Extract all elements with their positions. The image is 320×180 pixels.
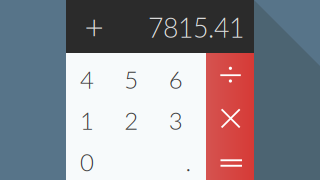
staticText: + — [84, 6, 103, 46]
staticText: 0 — [80, 148, 94, 176]
button[interactable]: 1 — [66, 95, 113, 138]
staticText: 1 — [80, 106, 94, 135]
staticText: . — [185, 148, 191, 176]
staticText: 4 — [80, 65, 94, 94]
staticText: 5 — [124, 65, 138, 94]
button[interactable]: Multiply — [206, 95, 254, 138]
staticText: 7815.41 — [148, 11, 244, 43]
button[interactable]: Divide — [206, 53, 254, 95]
staticText: 2 — [124, 106, 138, 135]
button[interactable]: 3 — [159, 95, 206, 138]
button[interactable]: Add — [79, 0, 109, 53]
button[interactable]: 6 — [159, 53, 206, 95]
staticText: 3 — [169, 106, 183, 135]
button[interactable]: 5 — [113, 53, 159, 95]
button[interactable]: Equals — [206, 138, 254, 180]
staticText: 6 — [169, 65, 183, 94]
button[interactable]: 4 — [66, 53, 113, 95]
button[interactable]: . — [159, 138, 206, 180]
button[interactable]: 2 — [113, 95, 159, 138]
button[interactable]: 0 — [66, 138, 113, 180]
